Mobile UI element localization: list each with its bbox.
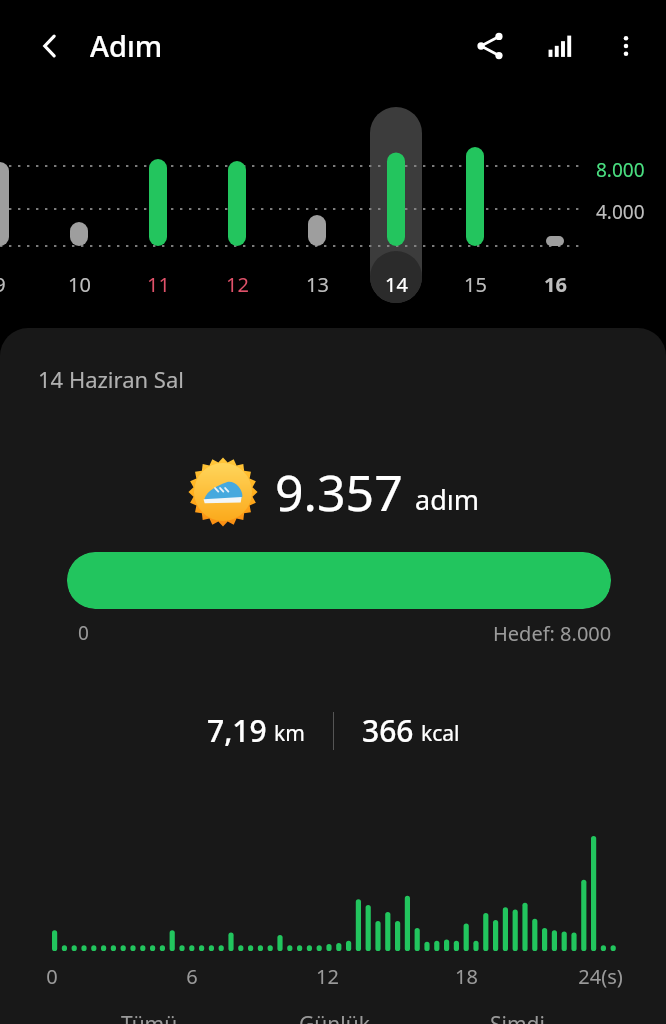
button[interactable]: More options [600,20,652,72]
staticText: 12 [226,271,249,298]
staticText: 12 [316,963,339,990]
staticText: 18 [455,963,478,990]
button[interactable]: 14 [366,268,426,300]
staticText: Şimdi [490,1010,545,1024]
staticText: 14 Haziran Sal [38,364,184,394]
button[interactable]: Back [24,20,76,72]
button[interactable]: Tümü [121,1010,178,1024]
staticText: 9 [0,271,6,298]
button[interactable]: 9 [0,268,30,300]
staticText: Tümü [121,1010,178,1024]
staticText: 8.000 [596,157,645,183]
staticText: 366 [362,710,414,751]
staticText: 14 [385,271,408,298]
button[interactable]: 10 [49,268,109,300]
staticText: 13 [306,271,329,298]
button[interactable]: Share [464,20,516,72]
staticText: adım [415,481,479,518]
staticText: 6 [186,963,198,990]
staticText: 16 [544,271,567,298]
staticText: kcal [421,719,460,748]
button[interactable]: 12 [207,268,267,300]
button[interactable]: Şimdi [490,1010,545,1024]
staticText: 24(s) [578,963,623,990]
button[interactable]: 366 [362,710,460,751]
button[interactable] [67,552,611,609]
staticText: Adım [90,26,163,65]
staticText: 15 [464,271,487,298]
button[interactable]: 7,19 [207,710,305,751]
staticText: 0 [78,620,89,646]
staticText: 10 [68,271,91,298]
staticText: 9.357 [275,458,403,526]
staticText: Hedef: 8.000 [493,620,612,647]
staticText: 0 [46,963,58,990]
button[interactable]: Trends [534,20,586,72]
staticText: 7,19 [207,710,267,751]
button[interactable]: 11 [128,268,188,300]
button[interactable]: Günlük [299,1010,370,1024]
staticText: 4.000 [596,199,645,225]
staticText: Günlük [299,1010,370,1024]
staticText: 11 [147,271,170,298]
staticText: km [274,719,305,748]
button[interactable]: 15 [445,268,505,300]
button[interactable]: 16 [525,268,585,300]
button[interactable]: 13 [287,268,347,300]
